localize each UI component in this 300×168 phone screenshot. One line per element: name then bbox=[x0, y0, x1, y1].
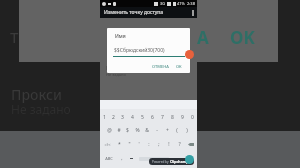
button[interactable]: 9 bbox=[177, 110, 187, 124]
button[interactable]: # bbox=[114, 123, 123, 137]
staticText: Не задано bbox=[11, 101, 71, 117]
staticText: & bbox=[145, 127, 149, 134]
staticText: * bbox=[118, 141, 121, 148]
button[interactable]: ' bbox=[134, 137, 144, 151]
button[interactable]: + bbox=[162, 123, 172, 137]
staticText: 9 bbox=[181, 114, 184, 121]
staticText: 1 bbox=[103, 114, 106, 121]
button[interactable]: % bbox=[132, 123, 142, 137]
button[interactable]: Change language bbox=[126, 151, 136, 166]
button[interactable]: : bbox=[144, 137, 154, 151]
staticText: T bbox=[10, 27, 19, 47]
button[interactable]: * bbox=[115, 137, 124, 151]
staticText: 2:38 bbox=[187, 1, 195, 6]
staticText: ( bbox=[176, 127, 178, 134]
staticText: ABC bbox=[105, 156, 113, 161]
button[interactable]: 0 bbox=[187, 110, 197, 124]
button[interactable]: ОТМЕНА bbox=[152, 64, 169, 69]
staticText: " bbox=[128, 141, 131, 148]
staticText: ОК bbox=[176, 64, 182, 69]
staticText: ; bbox=[158, 141, 160, 148]
staticText: OK bbox=[230, 26, 255, 49]
staticText: ' bbox=[138, 141, 140, 148]
staticText: ! bbox=[168, 141, 170, 148]
button[interactable]: 2 bbox=[109, 110, 118, 124]
staticText: - bbox=[156, 127, 158, 134]
staticText: 5 bbox=[141, 114, 144, 121]
staticText: Изменить точку доступа bbox=[104, 9, 164, 16]
staticText: % bbox=[135, 127, 140, 134]
button[interactable]: @ bbox=[105, 123, 114, 137]
staticText: =\< bbox=[104, 142, 111, 147]
staticText: Имя bbox=[115, 33, 126, 40]
staticText: Powered by bbox=[152, 160, 169, 164]
staticText: Не задано bbox=[106, 72, 126, 77]
button[interactable]: Enter bbox=[182, 151, 197, 166]
staticText: 41% bbox=[177, 1, 185, 6]
button[interactable]: Backspace bbox=[184, 137, 197, 151]
staticText: # bbox=[117, 127, 121, 134]
staticText: ↵ bbox=[187, 155, 193, 162]
staticText: A bbox=[197, 26, 209, 49]
staticText: 4 bbox=[131, 114, 134, 121]
button[interactable]: ) bbox=[182, 123, 192, 137]
button[interactable]: Space bbox=[136, 151, 172, 166]
staticText: + bbox=[166, 127, 169, 134]
button[interactable]: 4 bbox=[127, 110, 137, 124]
button[interactable]: " bbox=[124, 137, 134, 151]
staticText: 7 bbox=[161, 114, 164, 121]
button[interactable]: , bbox=[118, 151, 126, 166]
staticText: , bbox=[121, 155, 123, 162]
button[interactable]: ОК bbox=[176, 64, 182, 69]
staticText: 3G bbox=[160, 1, 166, 6]
staticText: 0 bbox=[191, 114, 194, 121]
button[interactable]: ? bbox=[174, 137, 184, 151]
button[interactable]: ; bbox=[154, 137, 164, 151]
staticText: $$Сбрюдский30(700) bbox=[114, 47, 165, 54]
button[interactable]: ABC bbox=[100, 151, 118, 166]
button[interactable]: =\< bbox=[100, 137, 115, 151]
staticText: @ bbox=[107, 127, 112, 134]
button[interactable]: ! bbox=[164, 137, 174, 151]
button[interactable]: 3 bbox=[118, 110, 127, 124]
button[interactable]: 1 bbox=[100, 110, 109, 124]
staticText: Прокси bbox=[11, 85, 62, 104]
staticText: 8 bbox=[171, 114, 174, 121]
button[interactable]: & bbox=[142, 123, 152, 137]
staticText: ОТМЕНА bbox=[152, 64, 169, 69]
staticText: ? bbox=[178, 141, 181, 148]
staticText: 2 bbox=[112, 114, 115, 121]
button[interactable]: 6 bbox=[147, 110, 157, 124]
staticText: 6 bbox=[151, 114, 154, 121]
staticText: $ bbox=[126, 127, 129, 134]
button[interactable]: - bbox=[152, 123, 162, 137]
staticText: Прокси bbox=[106, 65, 124, 72]
staticText: Clipchamp bbox=[170, 159, 189, 164]
button[interactable]: 5 bbox=[137, 110, 147, 124]
staticText: 3 bbox=[121, 114, 124, 121]
staticText: ) bbox=[186, 127, 188, 134]
staticText: : bbox=[148, 141, 150, 148]
button[interactable]: . bbox=[172, 151, 182, 166]
button[interactable]: More options bbox=[189, 7, 197, 18]
button[interactable]: 8 bbox=[167, 110, 177, 124]
button[interactable]: 7 bbox=[157, 110, 167, 124]
staticText: . bbox=[176, 155, 178, 162]
button[interactable]: ( bbox=[172, 123, 182, 137]
button[interactable]: $ bbox=[123, 123, 132, 137]
